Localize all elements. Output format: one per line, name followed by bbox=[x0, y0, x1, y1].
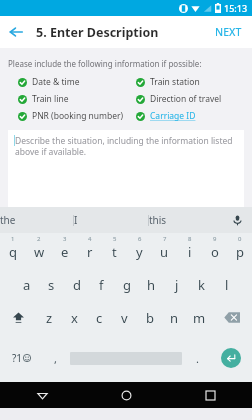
staticText: the bbox=[0, 213, 73, 227]
button[interactable]: b bbox=[137, 301, 162, 334]
button[interactable]: 2 bbox=[26, 233, 52, 268]
button[interactable]: v bbox=[112, 301, 137, 334]
staticText: x bbox=[71, 309, 78, 327]
staticText: Date & time bbox=[32, 76, 80, 88]
staticText: c bbox=[96, 309, 103, 327]
staticText: Train station bbox=[150, 76, 200, 88]
staticText: , bbox=[54, 351, 57, 366]
staticText: 0 bbox=[238, 235, 242, 243]
staticText: Carriage ID bbox=[150, 110, 196, 122]
button[interactable]: the bbox=[0, 207, 73, 233]
staticText: 3 bbox=[63, 235, 67, 243]
button[interactable]: d bbox=[64, 268, 89, 301]
button[interactable]: 4 bbox=[77, 233, 102, 268]
button[interactable]: NEXT bbox=[205, 19, 252, 45]
button[interactable]: j bbox=[164, 268, 189, 301]
staticText: f bbox=[99, 276, 104, 294]
button[interactable]: I bbox=[74, 207, 148, 233]
button[interactable]: l bbox=[214, 268, 239, 301]
button[interactable]: 8 bbox=[177, 233, 202, 268]
button[interactable]: 7 bbox=[152, 233, 177, 268]
staticText: s bbox=[48, 276, 55, 294]
button[interactable]: Enter bbox=[209, 334, 252, 382]
staticText: g bbox=[123, 276, 131, 294]
staticText: ?1 bbox=[12, 351, 23, 365]
staticText: p bbox=[236, 243, 244, 261]
button[interactable]: Carriage ID bbox=[126, 110, 196, 122]
button[interactable]: Shift bbox=[0, 301, 36, 334]
staticText: w bbox=[34, 243, 45, 261]
staticText: 6 bbox=[138, 235, 142, 243]
button[interactable]: 3 bbox=[52, 233, 77, 268]
staticText: l bbox=[225, 276, 229, 294]
button[interactable]: Recent apps bbox=[168, 382, 252, 408]
staticText: o bbox=[211, 243, 219, 261]
staticText: 5 bbox=[113, 235, 117, 243]
button[interactable]: 9 bbox=[202, 233, 227, 268]
staticText: Please include the following information… bbox=[8, 58, 202, 69]
button[interactable]: ?1 bbox=[0, 334, 43, 382]
staticText: 8 bbox=[188, 235, 192, 243]
button[interactable]: k bbox=[189, 268, 214, 301]
button[interactable]: h bbox=[139, 268, 164, 301]
staticText: Train line bbox=[32, 93, 69, 105]
staticText: Describe the situation, including the in… bbox=[15, 135, 238, 157]
button[interactable]: x bbox=[62, 301, 87, 334]
button[interactable]: c bbox=[87, 301, 112, 334]
button[interactable]: a bbox=[14, 268, 39, 301]
staticText: u bbox=[160, 243, 169, 261]
button[interactable]: m bbox=[187, 301, 212, 334]
staticText: n bbox=[170, 309, 179, 327]
button[interactable]: z bbox=[36, 301, 62, 334]
staticText: I bbox=[74, 213, 148, 227]
staticText: d bbox=[73, 276, 81, 294]
staticText: b bbox=[146, 309, 154, 327]
staticText: PNR (booking number) bbox=[32, 110, 124, 122]
staticText: Direction of travel bbox=[150, 93, 222, 105]
staticText: 15:13 bbox=[224, 2, 248, 14]
staticText: i bbox=[188, 243, 192, 261]
staticText: t bbox=[112, 243, 117, 261]
button[interactable]: this bbox=[149, 207, 223, 233]
staticText: q bbox=[9, 243, 17, 261]
staticText: j bbox=[175, 276, 179, 294]
staticText: 1 bbox=[11, 235, 15, 243]
staticText: r bbox=[87, 243, 93, 261]
staticText: v bbox=[121, 309, 128, 327]
button[interactable]: Backspace bbox=[212, 301, 252, 334]
staticText: z bbox=[46, 309, 53, 327]
staticText: 9 bbox=[213, 235, 217, 243]
staticText: h bbox=[147, 276, 156, 294]
button[interactable]: f bbox=[89, 268, 114, 301]
button[interactable]: Back bbox=[0, 16, 32, 48]
staticText: m bbox=[193, 309, 206, 327]
staticText: 7 bbox=[163, 235, 167, 243]
staticText: a bbox=[23, 276, 31, 294]
button[interactable]: Home bbox=[84, 382, 168, 408]
staticText: 2 bbox=[37, 235, 41, 243]
button[interactable]: Voice input bbox=[223, 207, 252, 233]
button[interactable]: . bbox=[185, 334, 209, 382]
button[interactable]: g bbox=[114, 268, 139, 301]
staticText: e bbox=[61, 243, 69, 261]
button[interactable]: s bbox=[39, 268, 64, 301]
staticText: y bbox=[136, 243, 143, 261]
button[interactable]: Back bbox=[0, 382, 84, 408]
button[interactable]: , bbox=[43, 334, 67, 382]
button[interactable]: 1 bbox=[0, 233, 26, 268]
button[interactable]: 5 bbox=[102, 233, 127, 268]
button[interactable]: 6 bbox=[127, 233, 152, 268]
button[interactable]: n bbox=[162, 301, 187, 334]
button[interactable]: 0 bbox=[227, 233, 252, 268]
staticText: k bbox=[198, 276, 205, 294]
staticText: NEXT bbox=[215, 25, 242, 39]
staticText: 4 bbox=[88, 235, 92, 243]
button[interactable]: Describe the situation, including the in… bbox=[8, 130, 244, 207]
staticText: this bbox=[149, 213, 223, 227]
staticText: 5. Enter Description bbox=[36, 24, 159, 41]
staticText: . bbox=[196, 351, 199, 366]
